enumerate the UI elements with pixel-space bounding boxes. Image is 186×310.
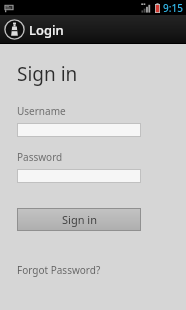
staticText: Login	[29, 21, 64, 39]
staticText: Sign in	[62, 212, 97, 227]
button[interactable]: Text field	[17, 123, 141, 137]
button[interactable]: Text field	[17, 169, 141, 183]
staticText: Sign in	[17, 61, 78, 87]
button[interactable]: App logo	[4, 19, 64, 40]
staticText: Forgot Password?	[17, 263, 101, 277]
staticText: Password	[17, 150, 63, 164]
button[interactable]: Forgot Password?	[17, 261, 101, 279]
staticText: Username	[17, 104, 66, 118]
staticText: 9:15	[163, 1, 183, 15]
other: App logo	[4, 19, 25, 40]
button[interactable]: Sign in	[17, 208, 141, 231]
